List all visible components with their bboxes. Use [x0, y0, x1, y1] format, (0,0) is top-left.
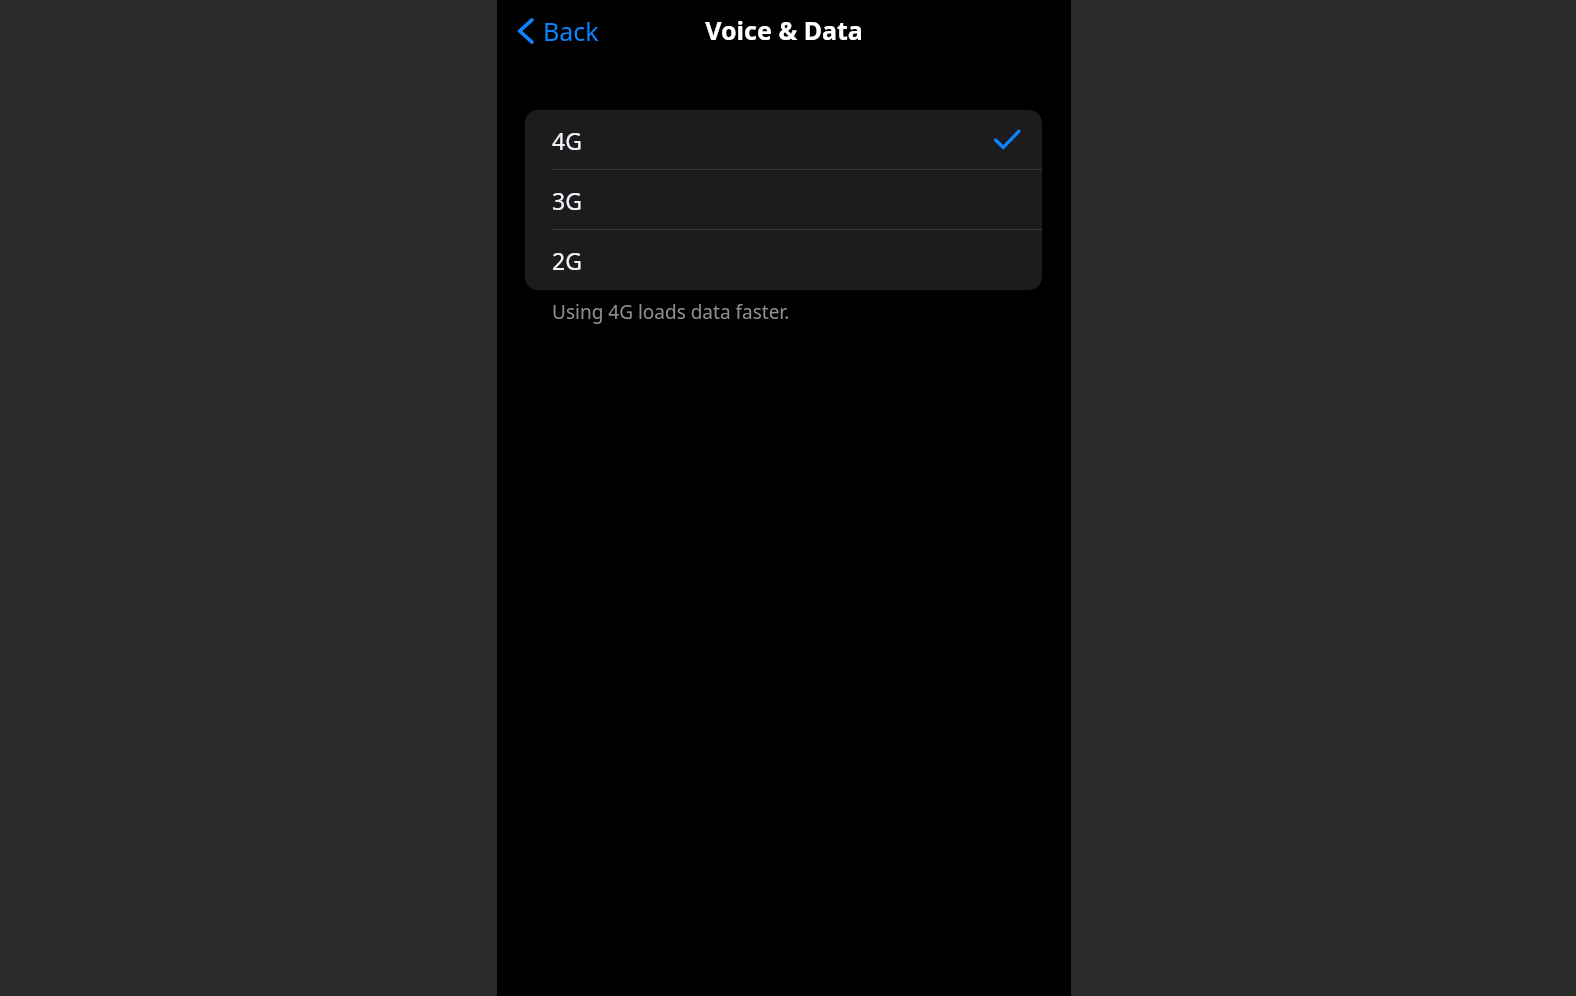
staticText: 4G	[552, 125, 582, 156]
staticText: 3G	[552, 185, 582, 216]
button[interactable]: 4G	[525, 110, 1042, 170]
staticText: Using 4G loads data faster.	[552, 299, 790, 325]
other: Selected	[994, 129, 1020, 151]
staticText: Voice & Data	[705, 13, 863, 47]
staticText: 2G	[552, 245, 582, 276]
button[interactable]: Back	[509, 8, 607, 54]
button[interactable]: 2G	[525, 230, 1042, 290]
button[interactable]: 3G	[525, 170, 1042, 230]
staticText: Back	[543, 14, 599, 48]
